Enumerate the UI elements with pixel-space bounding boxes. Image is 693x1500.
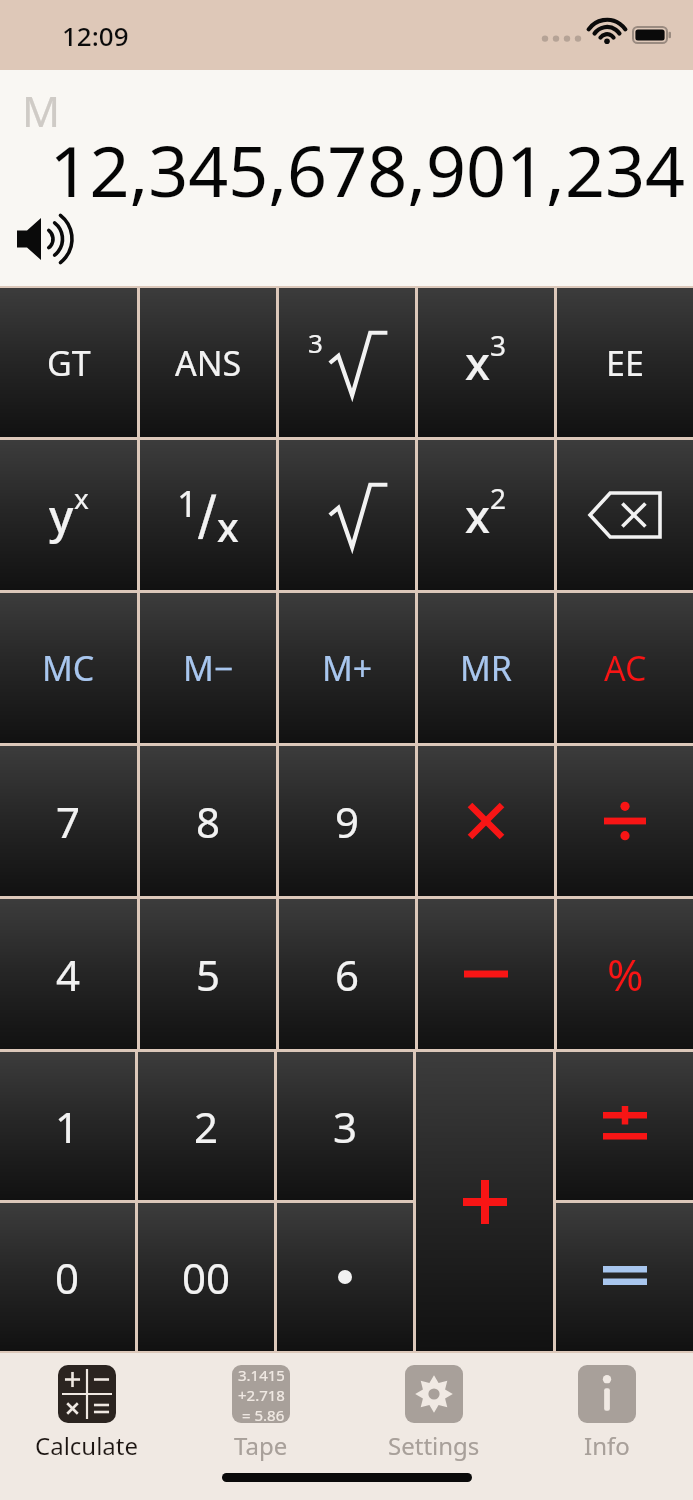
button[interactable]: 8 (140, 746, 276, 896)
staticText: 9 (335, 793, 360, 850)
staticText: MC (42, 645, 95, 691)
button[interactable]: 3 (277, 1052, 413, 1200)
staticText: 0 (55, 1249, 80, 1306)
staticText: 2 (194, 1098, 219, 1155)
button[interactable]: Plus minus (556, 1052, 693, 1200)
button[interactable]: Calculate (0, 1361, 174, 1466)
staticText: 4 (56, 946, 81, 1003)
button[interactable]: 9 (279, 746, 415, 896)
staticText: x (465, 484, 490, 547)
button[interactable]: X cubed (418, 288, 554, 437)
button[interactable]: 5 (140, 899, 276, 1049)
staticText: AC (604, 645, 647, 691)
button[interactable]: ANS (140, 288, 276, 437)
button[interactable]: MR (418, 593, 554, 743)
staticText: 7 (56, 793, 81, 850)
staticText: ANS (175, 340, 242, 386)
button[interactable]: X squared (418, 440, 554, 590)
button[interactable]: Info (520, 1361, 693, 1466)
button[interactable]: 0 (0, 1203, 135, 1351)
button[interactable]: Backspace (557, 440, 693, 590)
staticText: 3 (333, 1098, 358, 1155)
button[interactable]: Y to the x (0, 440, 137, 590)
staticText: EE (606, 340, 644, 386)
button[interactable]: Decimal point (277, 1203, 413, 1351)
staticText: = 5.86 (242, 1405, 285, 1423)
staticText: 12:09 (62, 18, 129, 53)
staticText: 6 (335, 946, 360, 1003)
staticText: ∕ (198, 484, 217, 547)
button[interactable]: M minus (140, 593, 276, 743)
staticText: +2.718 (238, 1385, 285, 1405)
button[interactable]: MC (0, 593, 137, 743)
button[interactable]: 7 (0, 746, 137, 896)
button[interactable]: Settings (347, 1361, 520, 1466)
button[interactable]: GT (0, 288, 137, 437)
staticText: 00 (182, 1249, 231, 1306)
button[interactable]: M plus (279, 593, 415, 743)
staticText: 3 (490, 326, 507, 364)
staticText: 1 (177, 479, 198, 528)
button[interactable]: Cube root (279, 288, 415, 437)
button[interactable]: 6 (279, 899, 415, 1049)
button[interactable]: Divide (557, 746, 693, 896)
other: Sound (15, 214, 77, 264)
staticText: y (49, 484, 74, 547)
staticText: 12,345,678,901,234 (49, 122, 685, 217)
button[interactable]: Equals (556, 1203, 693, 1351)
staticText: MR (460, 645, 512, 691)
staticText: 5 (196, 946, 221, 1003)
button[interactable]: 3.1415 (174, 1361, 347, 1466)
staticText: GT (47, 340, 91, 386)
staticText: 3.1415 (238, 1365, 285, 1385)
staticText: x (74, 479, 89, 517)
button[interactable]: Percent (557, 899, 693, 1049)
staticText: M+ (322, 645, 373, 691)
button[interactable]: Plus (416, 1052, 553, 1351)
staticText: % (607, 944, 644, 1004)
button[interactable]: EE (557, 288, 693, 437)
staticText: 2 (490, 479, 507, 517)
button[interactable]: AC (557, 593, 693, 743)
button[interactable]: 1 (0, 1052, 135, 1200)
button[interactable]: 2 (138, 1052, 274, 1200)
button[interactable]: One over x (140, 440, 276, 590)
button[interactable]: Minus (418, 899, 554, 1049)
staticText: Settings (388, 1429, 480, 1462)
button[interactable]: Square root (279, 440, 415, 590)
staticText: 1 (55, 1098, 80, 1155)
staticText: M− (183, 645, 234, 691)
button[interactable]: 4 (0, 899, 137, 1049)
button[interactable]: Multiply (418, 746, 554, 896)
staticText: 3 (308, 325, 323, 360)
staticText: x (217, 499, 239, 553)
staticText: Info (584, 1429, 630, 1462)
staticText: x (465, 331, 490, 394)
staticText: M (22, 82, 61, 139)
button[interactable]: Double zero (138, 1203, 274, 1351)
staticText: Calculate (35, 1429, 139, 1462)
staticText: 8 (196, 793, 221, 850)
staticText: Tape (234, 1429, 288, 1462)
